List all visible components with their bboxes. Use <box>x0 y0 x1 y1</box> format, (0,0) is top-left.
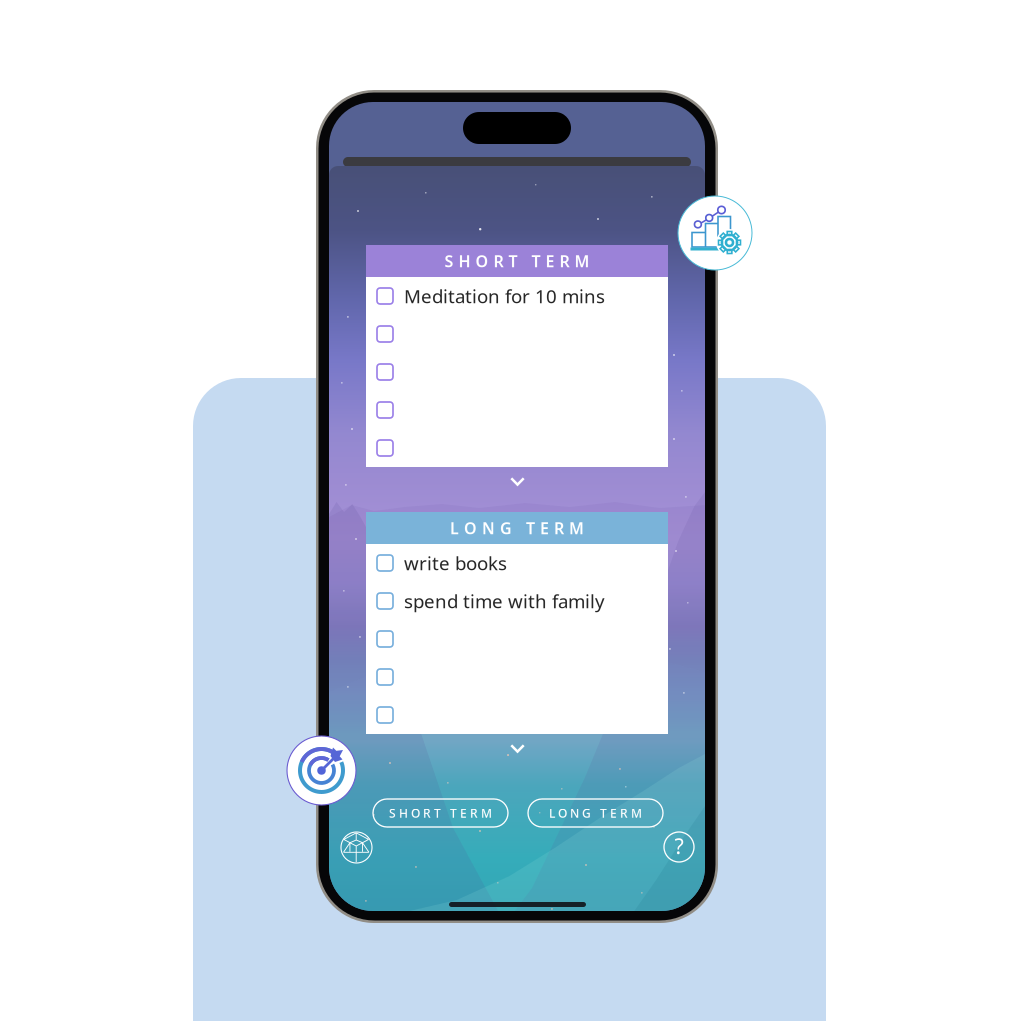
button[interactable]: Goals <box>287 736 356 805</box>
button[interactable]: spend time with family <box>366 582 668 620</box>
button[interactable]: Analytics <box>678 196 752 270</box>
button[interactable]: write books <box>366 544 668 582</box>
staticText: L O N G T E R M <box>450 517 584 539</box>
button[interactable] <box>366 315 668 353</box>
button[interactable] <box>366 353 668 391</box>
button[interactable]: Meditation for 10 mins <box>366 277 668 315</box>
button[interactable]: S H O R T T E R M <box>373 799 508 827</box>
staticText: write books <box>404 551 507 575</box>
button[interactable] <box>366 391 668 429</box>
button[interactable]: Brand <box>341 832 372 863</box>
staticText: S H O R T T E R M <box>389 805 492 821</box>
staticText: spend time with family <box>404 589 605 613</box>
staticText: ? <box>674 832 683 860</box>
button[interactable] <box>366 620 668 658</box>
staticText: S H O R T T E R M <box>444 250 589 272</box>
button[interactable] <box>366 696 668 734</box>
button[interactable] <box>366 429 668 467</box>
button[interactable]: L O N G T E R M <box>528 799 663 827</box>
button[interactable] <box>366 658 668 696</box>
button[interactable]: Help <box>664 832 694 862</box>
staticText: Meditation for 10 mins <box>404 284 605 308</box>
staticText: L O N G T E R M <box>549 805 642 821</box>
